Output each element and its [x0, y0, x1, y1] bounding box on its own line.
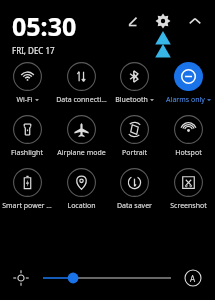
staticText: Data connecti…: [56, 95, 107, 105]
staticText: Airplane mode: [57, 148, 106, 158]
button[interactable]: Bluetooth: [108, 62, 160, 105]
button[interactable]: Location: [55, 168, 107, 211]
staticText: FRI, DEC 17: [12, 45, 55, 56]
button[interactable]: Edit: [122, 11, 144, 33]
button[interactable]: Collapse: [184, 11, 206, 33]
button[interactable]: Airplane mode: [55, 115, 107, 158]
button[interactable]: Settings: [152, 10, 174, 32]
staticText: Portrait: [122, 148, 147, 158]
staticText: Hotspot: [175, 148, 202, 158]
button[interactable]: Alarms only: [162, 62, 214, 105]
staticText: Location: [67, 201, 96, 211]
button[interactable]: Portrait: [108, 115, 160, 158]
button[interactable]: Data connecti…: [55, 62, 107, 105]
button[interactable]: Hotspot: [162, 115, 214, 158]
button[interactable]: Data saver: [108, 168, 160, 211]
staticText: Smart power …: [2, 201, 52, 211]
staticText: Flashlight: [11, 148, 43, 158]
button[interactable]: Brightness slider: [43, 269, 171, 287]
button[interactable]: Wi-Fi: [1, 62, 53, 105]
staticText: Screenshot: [170, 201, 207, 211]
staticText: Bluetooth: [115, 95, 148, 105]
button[interactable]: Auto brightness: [184, 269, 202, 287]
button[interactable]: Flashlight: [1, 115, 53, 158]
button[interactable]: Screenshot: [162, 168, 214, 211]
staticText: A: [190, 273, 196, 284]
staticText: 05:30: [12, 9, 77, 43]
staticText: Data saver: [117, 201, 152, 211]
button[interactable]: Brightness: [12, 269, 30, 287]
button[interactable]: Smart power …: [1, 168, 53, 211]
staticText: Wi-Fi: [16, 95, 33, 105]
staticText: Alarms only: [166, 95, 205, 105]
